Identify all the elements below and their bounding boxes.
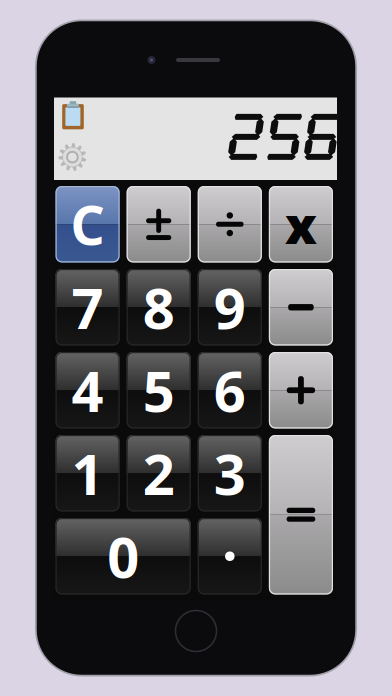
button[interactable]: 8	[127, 269, 191, 345]
staticText: 3	[214, 436, 246, 510]
staticText: 0	[107, 519, 139, 593]
button[interactable]: Plus minus	[127, 186, 191, 262]
button[interactable]: Clear	[55, 186, 120, 262]
staticText: 9	[214, 270, 246, 344]
staticText: 6	[214, 353, 246, 427]
button[interactable]: Settings	[58, 143, 86, 171]
button[interactable]: Divide	[198, 186, 262, 262]
button[interactable]: 6	[198, 352, 262, 428]
staticText: C	[71, 189, 105, 260]
staticText: 5	[143, 353, 175, 427]
button[interactable]: Paste	[61, 101, 84, 130]
button[interactable]: 2	[127, 435, 191, 511]
button[interactable]: Equals	[269, 435, 333, 594]
button[interactable]: 3	[198, 435, 262, 511]
button[interactable]: 9	[198, 269, 262, 345]
staticText: 2	[143, 436, 175, 510]
staticText: 7	[72, 270, 104, 344]
button[interactable]: Plus	[269, 352, 333, 428]
button[interactable]: 4	[55, 352, 120, 428]
button[interactable]: 5	[127, 352, 191, 428]
button[interactable]: 0	[55, 518, 191, 594]
button[interactable]: 7	[55, 269, 120, 345]
staticText: x	[285, 191, 317, 258]
staticText: 1	[72, 436, 104, 510]
staticText: 4	[72, 353, 104, 427]
button[interactable]: Decimal point	[198, 518, 262, 594]
staticText: 8	[143, 270, 175, 344]
button[interactable]: 1	[55, 435, 120, 511]
button[interactable]: Minus	[269, 269, 333, 345]
button[interactable]: Multiply	[269, 186, 333, 262]
